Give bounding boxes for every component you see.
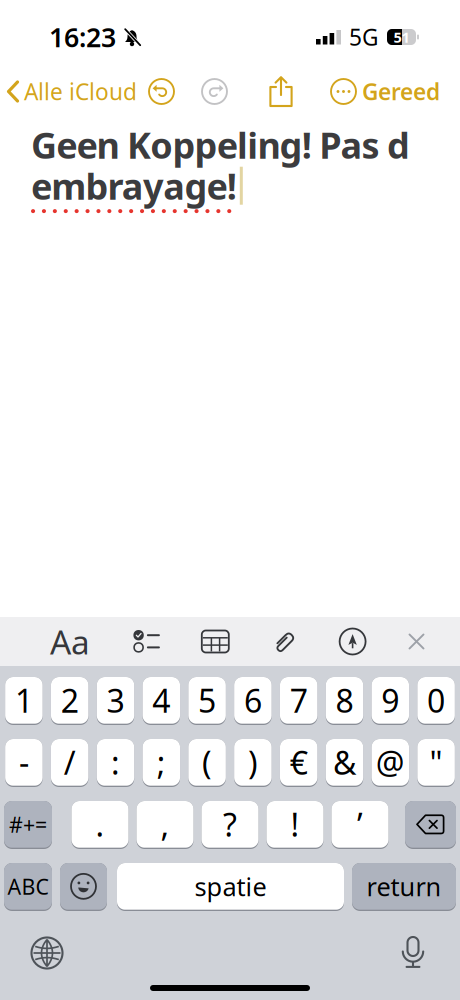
- staticText: 2: [61, 679, 79, 722]
- button[interactable]: €: [280, 739, 317, 787]
- button[interactable]: 9: [372, 677, 409, 725]
- staticText: 6: [244, 679, 262, 722]
- button[interactable]: Table: [202, 630, 229, 652]
- button[interactable]: Attach: [271, 628, 297, 654]
- staticText: ;: [157, 741, 166, 784]
- staticText: @: [376, 741, 405, 784]
- button[interactable]: Gereed: [362, 76, 440, 106]
- button[interactable]: 8: [326, 677, 363, 725]
- button[interactable]: Undo: [149, 79, 174, 104]
- button[interactable]: Close: [408, 633, 425, 650]
- staticText: -: [19, 741, 29, 784]
- button[interactable]: ,: [136, 801, 193, 849]
- staticText: 8: [335, 679, 353, 722]
- button[interactable]: (: [188, 739, 226, 787]
- staticText: 3: [106, 679, 124, 722]
- button[interactable]: Emoji: [60, 863, 107, 911]
- button[interactable]: 5: [188, 677, 226, 725]
- button[interactable]: -: [5, 739, 43, 787]
- staticText: /: [64, 741, 76, 784]
- button[interactable]: ;: [142, 739, 180, 787]
- staticText: €: [290, 741, 308, 784]
- button[interactable]: Redo: [202, 79, 227, 104]
- staticText: .: [95, 803, 104, 846]
- button[interactable]: Format: [50, 619, 90, 664]
- button[interactable]: Next keyboard: [32, 938, 62, 968]
- staticText: 0: [427, 679, 445, 722]
- button[interactable]: return: [352, 863, 456, 911]
- button[interactable]: ’: [331, 801, 388, 849]
- button[interactable]: Alle iCloud: [6, 76, 137, 106]
- staticText: 5G: [349, 22, 379, 52]
- button[interactable]: Share: [267, 75, 295, 108]
- staticText: 51: [393, 27, 409, 47]
- staticText: !: [290, 803, 299, 846]
- button[interactable]: 3: [97, 677, 134, 725]
- button[interactable]: 2: [51, 677, 88, 725]
- staticText: 16:23: [49, 19, 116, 55]
- staticText: 5: [198, 679, 216, 722]
- staticText: 1: [15, 679, 33, 722]
- staticText: (: [202, 741, 212, 784]
- button[interactable]: Delete: [405, 801, 456, 849]
- staticText: spatie: [194, 869, 266, 903]
- staticText: 7: [290, 679, 308, 722]
- button[interactable]: ?: [201, 801, 258, 849]
- staticText: :: [111, 741, 120, 784]
- button[interactable]: More: [331, 79, 356, 104]
- staticText: Gereed: [362, 76, 440, 106]
- staticText: ,: [160, 803, 169, 846]
- button[interactable]: ": [417, 739, 455, 787]
- staticText: &: [333, 741, 356, 784]
- button[interactable]: 1: [5, 677, 43, 725]
- staticText: return: [366, 869, 441, 903]
- button[interactable]: @: [372, 739, 409, 787]
- staticText: ?: [223, 803, 237, 846]
- button[interactable]: 6: [234, 677, 272, 725]
- button[interactable]: 7: [280, 677, 317, 725]
- staticText: 9: [381, 679, 399, 722]
- button[interactable]: &: [326, 739, 363, 787]
- button[interactable]: ): [234, 739, 272, 787]
- button[interactable]: 0: [417, 677, 455, 725]
- button[interactable]: !: [266, 801, 323, 849]
- button[interactable]: .: [71, 801, 128, 849]
- button[interactable]: Dictate: [400, 937, 426, 969]
- staticText: ": [430, 741, 443, 784]
- staticText: Aa: [50, 619, 90, 664]
- button[interactable]: spatie: [117, 863, 344, 911]
- button[interactable]: :: [97, 739, 134, 787]
- staticText: embrayage!: [31, 162, 237, 210]
- button[interactable]: Markup: [340, 628, 366, 654]
- staticText: Alle iCloud: [24, 76, 137, 106]
- staticText: ’: [357, 803, 363, 846]
- button[interactable]: ABC: [4, 863, 52, 911]
- staticText: 4: [152, 679, 170, 722]
- staticText: Geen Koppeling! Pas d: [31, 121, 410, 169]
- staticText: ABC: [7, 872, 48, 900]
- button[interactable]: /: [51, 739, 88, 787]
- button[interactable]: #+=: [4, 801, 52, 849]
- button[interactable]: Checklist: [132, 630, 159, 653]
- staticText: #+=: [9, 810, 47, 838]
- button[interactable]: 4: [142, 677, 180, 725]
- staticText: ): [248, 741, 258, 784]
